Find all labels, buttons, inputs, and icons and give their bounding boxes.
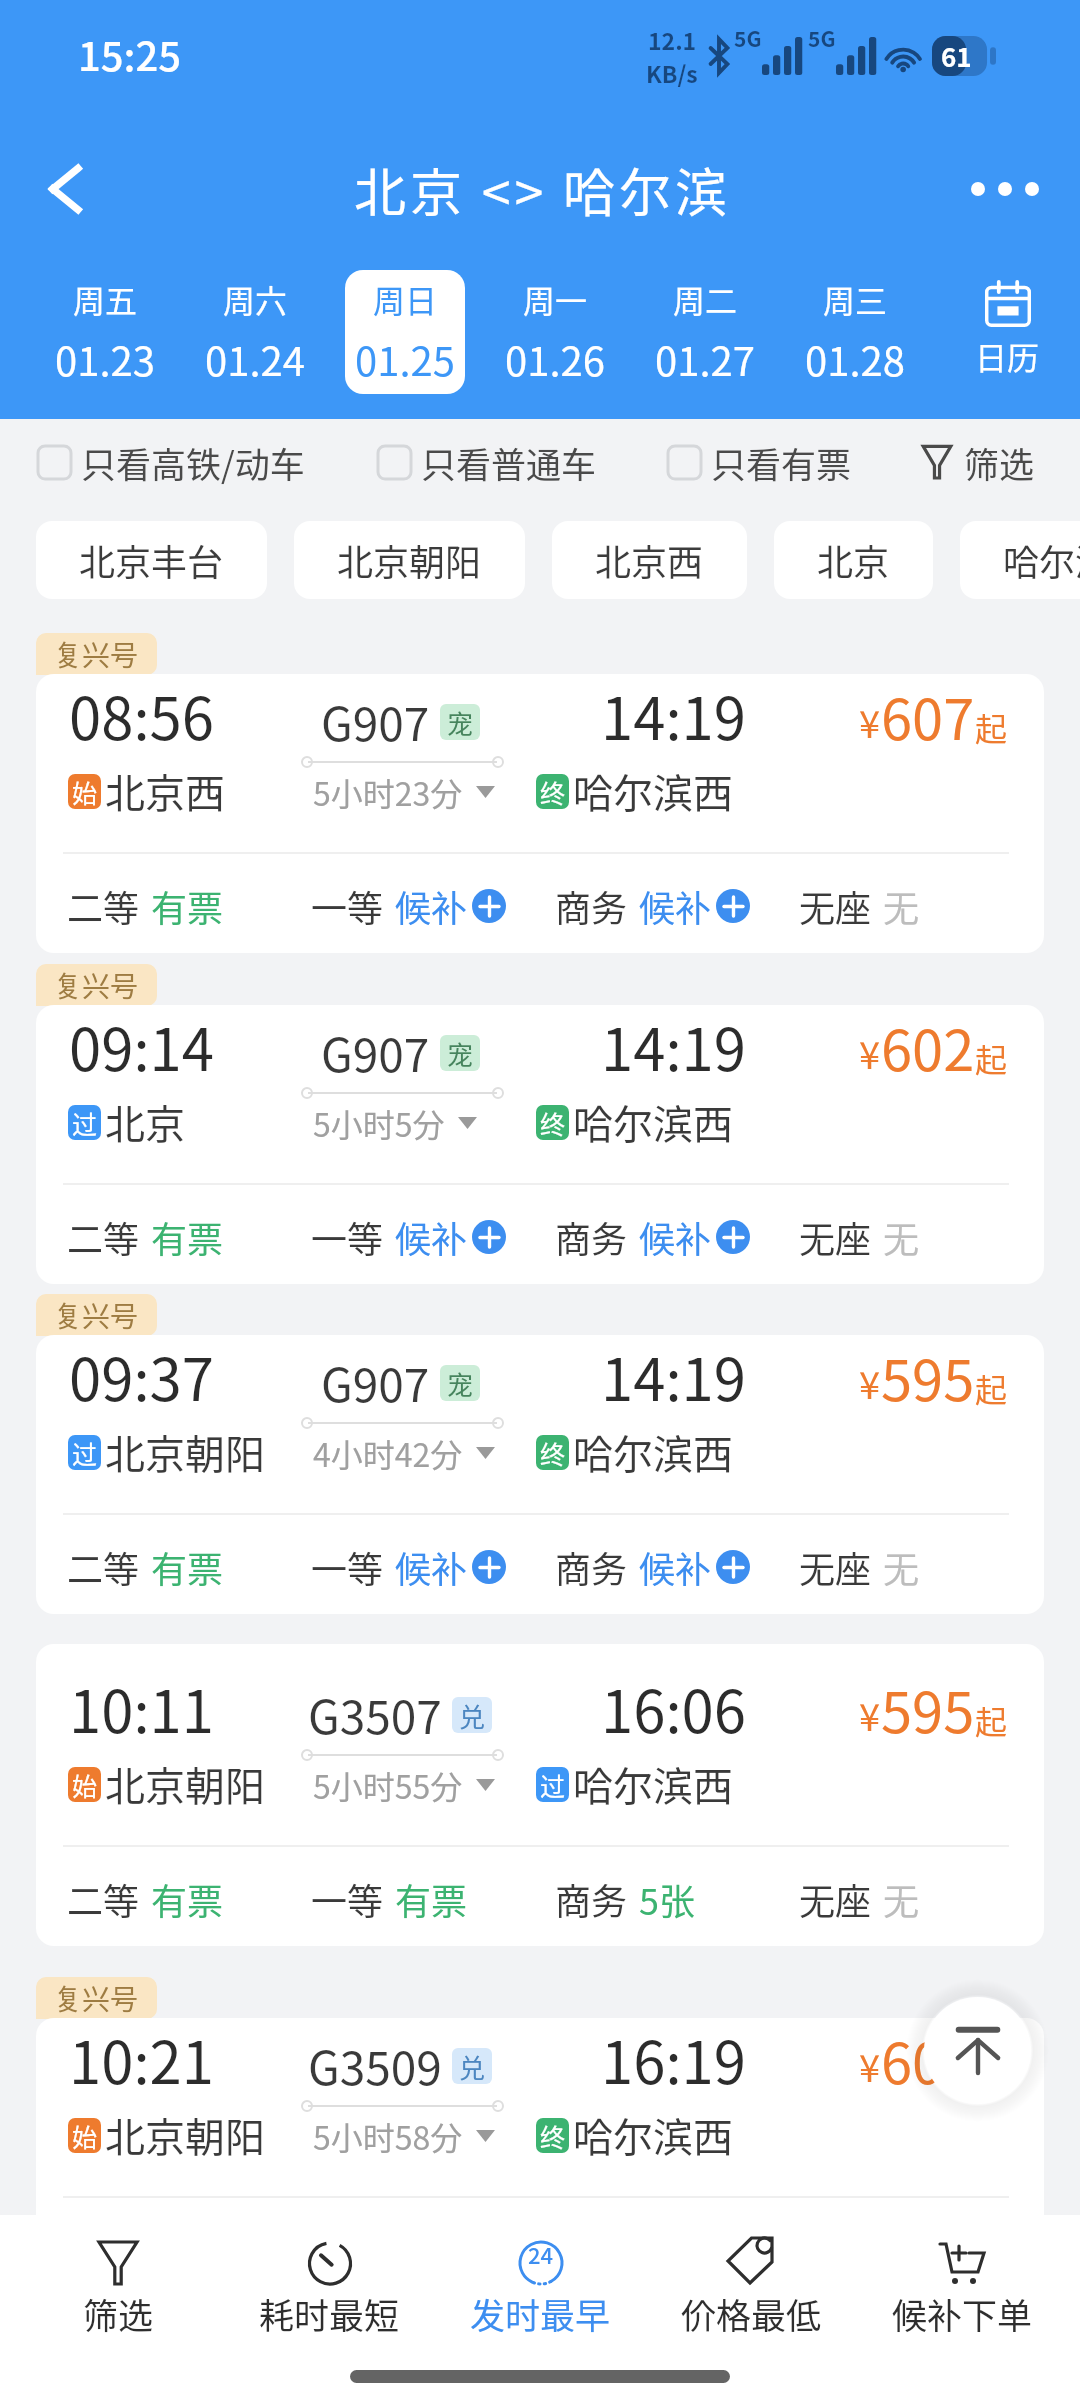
staticText: 只看有票 [711, 437, 852, 488]
button[interactable]: 周一 [495, 270, 615, 394]
button[interactable]: 更多 [950, 134, 1060, 244]
staticText: 北京朝阳 [105, 2106, 265, 2164]
button[interactable]: 北京丰台 [36, 521, 267, 599]
staticText: 商务 [555, 880, 628, 932]
staticText: 起 [975, 2048, 1008, 2094]
staticText: 607 [881, 675, 975, 756]
staticText: 候补 [639, 1541, 712, 1593]
button[interactable]: 24 [435, 2215, 646, 2355]
staticText: 602 [881, 1006, 975, 1087]
staticText: 24 [528, 2238, 554, 2270]
staticText: 哈尔滨 [1003, 534, 1080, 586]
staticText: 有票 [151, 1541, 224, 1593]
button[interactable]: 09:37 [36, 1335, 1044, 1614]
staticText: 无 [883, 880, 920, 932]
button[interactable]: 08:56 [36, 674, 1044, 953]
staticText: 只看普通车 [421, 437, 597, 488]
button[interactable]: 候补下单 [857, 2215, 1068, 2355]
staticText: 过 [540, 1767, 566, 1802]
button[interactable]: 周三 [795, 270, 915, 394]
button[interactable]: 只看高铁/动车 [38, 416, 305, 508]
staticText: 一等 [311, 1211, 384, 1263]
staticText: G3507 [308, 1681, 442, 1748]
button[interactable]: 只看有票 [668, 416, 852, 508]
staticText: 有票 [395, 1873, 468, 1925]
staticText: 01.23 [55, 330, 155, 388]
staticText: 5小时58分 [313, 2113, 463, 2159]
button[interactable]: 耗时最短 [224, 2215, 435, 2355]
staticText: 5张 [639, 1873, 695, 1925]
staticText: 兑 [459, 1697, 486, 1733]
staticText: 候补 [395, 1541, 468, 1593]
staticText: 607 [881, 2019, 975, 2100]
button[interactable]: 周五 [45, 270, 165, 394]
staticText: 10:11 [69, 1666, 214, 1750]
staticText: 周三 [823, 276, 888, 322]
staticText: 09:14 [69, 1005, 214, 1088]
staticText: 复兴号 [54, 965, 139, 1006]
staticText: 宠 [447, 1035, 474, 1071]
button[interactable]: 价格最低 [646, 2215, 857, 2355]
staticText: G907 [321, 1019, 430, 1086]
staticText: 一等 [311, 880, 384, 932]
button[interactable]: 北京西 [552, 521, 747, 599]
staticText: 有票 [151, 1873, 224, 1925]
button[interactable]: 周二 [645, 270, 765, 394]
button[interactable]: 筛选 [12, 2215, 224, 2355]
staticText: 商务 [555, 1873, 628, 1925]
staticText: ¥ [859, 1355, 881, 1410]
staticText: 北京 [817, 534, 890, 586]
staticText: 商务 [555, 2224, 628, 2276]
staticText: 哈尔滨西 [573, 2106, 733, 2164]
staticText: 16:19 [601, 2018, 746, 2101]
staticText: 北京西 [105, 762, 225, 820]
button[interactable]: 北京 [774, 521, 933, 599]
staticText: 无 [883, 1541, 920, 1593]
staticText: 5小时5分 [313, 1100, 445, 1146]
staticText: 起 [975, 704, 1008, 750]
staticText: 宠 [447, 704, 474, 740]
staticText: 哈尔滨西 [573, 762, 733, 820]
button[interactable]: 回到顶部 [924, 1997, 1031, 2104]
button[interactable]: 北京朝阳 [294, 521, 525, 599]
button[interactable]: 筛选 [922, 416, 1041, 508]
staticText: 二等 [67, 2224, 140, 2276]
button[interactable]: 返回 [10, 134, 120, 244]
staticText: 无座 [799, 1211, 872, 1263]
staticText: 周日 [373, 276, 438, 322]
staticText: 有票 [151, 880, 224, 932]
staticText: 14:19 [601, 674, 746, 757]
staticText: 哈尔滨西 [573, 1093, 733, 1151]
button[interactable]: 日历 [947, 268, 1067, 392]
staticText: 始 [72, 2118, 98, 2153]
staticText: 周五 [73, 276, 138, 322]
staticText: 14:19 [601, 1335, 746, 1418]
staticText: 商务 [555, 1541, 628, 1593]
staticText: 595 [881, 1336, 975, 1417]
staticText: 候补下单 [892, 2288, 1033, 2339]
staticText: 16:06 [601, 1666, 746, 1750]
button[interactable]: 周日 [345, 270, 465, 394]
staticText: 过 [72, 1105, 98, 1140]
staticText: 01.25 [355, 330, 455, 388]
staticText: G3509 [308, 2032, 442, 2099]
staticText: 北京西 [595, 534, 704, 586]
button[interactable]: 周六 [195, 270, 315, 394]
staticText: 61 [941, 37, 972, 75]
staticText: KB/s [646, 56, 698, 89]
staticText: 15:25 [78, 25, 182, 83]
staticText: 始 [72, 774, 98, 809]
button[interactable]: 09:14 [36, 1005, 1044, 1284]
staticText: 宠 [447, 1365, 474, 1401]
button[interactable]: 10:11 [36, 1644, 1044, 1946]
button[interactable]: 10:21 [36, 2018, 1044, 2297]
staticText: 01.28 [805, 330, 905, 388]
staticText: 候补 [395, 1211, 468, 1263]
staticText: ¥ [859, 694, 881, 749]
button[interactable]: 只看普通车 [378, 416, 597, 508]
button[interactable]: 哈尔滨 [960, 521, 1080, 599]
staticText: 北京朝阳 [337, 534, 482, 586]
